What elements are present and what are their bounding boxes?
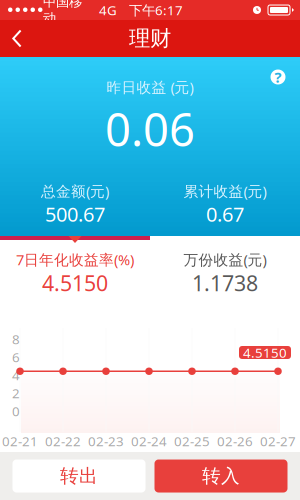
button[interactable]: Help	[263, 62, 293, 92]
staticText: 4.5150	[42, 269, 108, 297]
staticText: 02-23	[88, 432, 124, 450]
staticText: 昨日收益 (元)	[106, 77, 193, 97]
staticText: 02-26	[217, 432, 253, 450]
staticText: 中国移动	[43, 0, 82, 26]
staticText: 4.5150	[243, 344, 287, 361]
staticText: 下午6:17	[129, 1, 183, 19]
staticText: 02-24	[131, 432, 167, 450]
staticText: 02-25	[174, 432, 210, 450]
staticText: 02-27	[260, 432, 296, 450]
staticText: 2	[12, 384, 20, 402]
staticText: 4G	[99, 1, 117, 19]
staticText: 累计收益(元)	[183, 181, 266, 201]
staticText: 6	[12, 348, 20, 366]
staticText: 8	[12, 330, 20, 348]
staticText: 理财	[129, 25, 171, 52]
button[interactable]: 万份收益(元)	[150, 240, 300, 302]
button[interactable]: 7日年化收益率(%)	[0, 240, 150, 302]
staticText: 总金额(元)	[41, 181, 109, 201]
button[interactable]: 转出	[12, 459, 145, 492]
staticText: 500.67	[45, 201, 105, 227]
staticText: 7日年化收益率(%)	[16, 250, 134, 269]
staticText: 02-22	[45, 432, 81, 450]
staticText: ?	[274, 67, 281, 87]
button[interactable]: 转入	[154, 459, 287, 492]
staticText: 1.1738	[192, 269, 258, 297]
staticText: 0.06	[105, 99, 195, 159]
staticText: 0	[12, 402, 20, 420]
button[interactable]: Back	[0, 20, 34, 57]
staticText: 万份收益(元)	[183, 250, 266, 269]
staticText: 0.67	[206, 201, 244, 227]
staticText: 4	[12, 366, 20, 384]
staticText: 02-21	[2, 432, 38, 450]
staticText: 转入	[202, 464, 240, 487]
staticText: 转出	[60, 464, 98, 487]
